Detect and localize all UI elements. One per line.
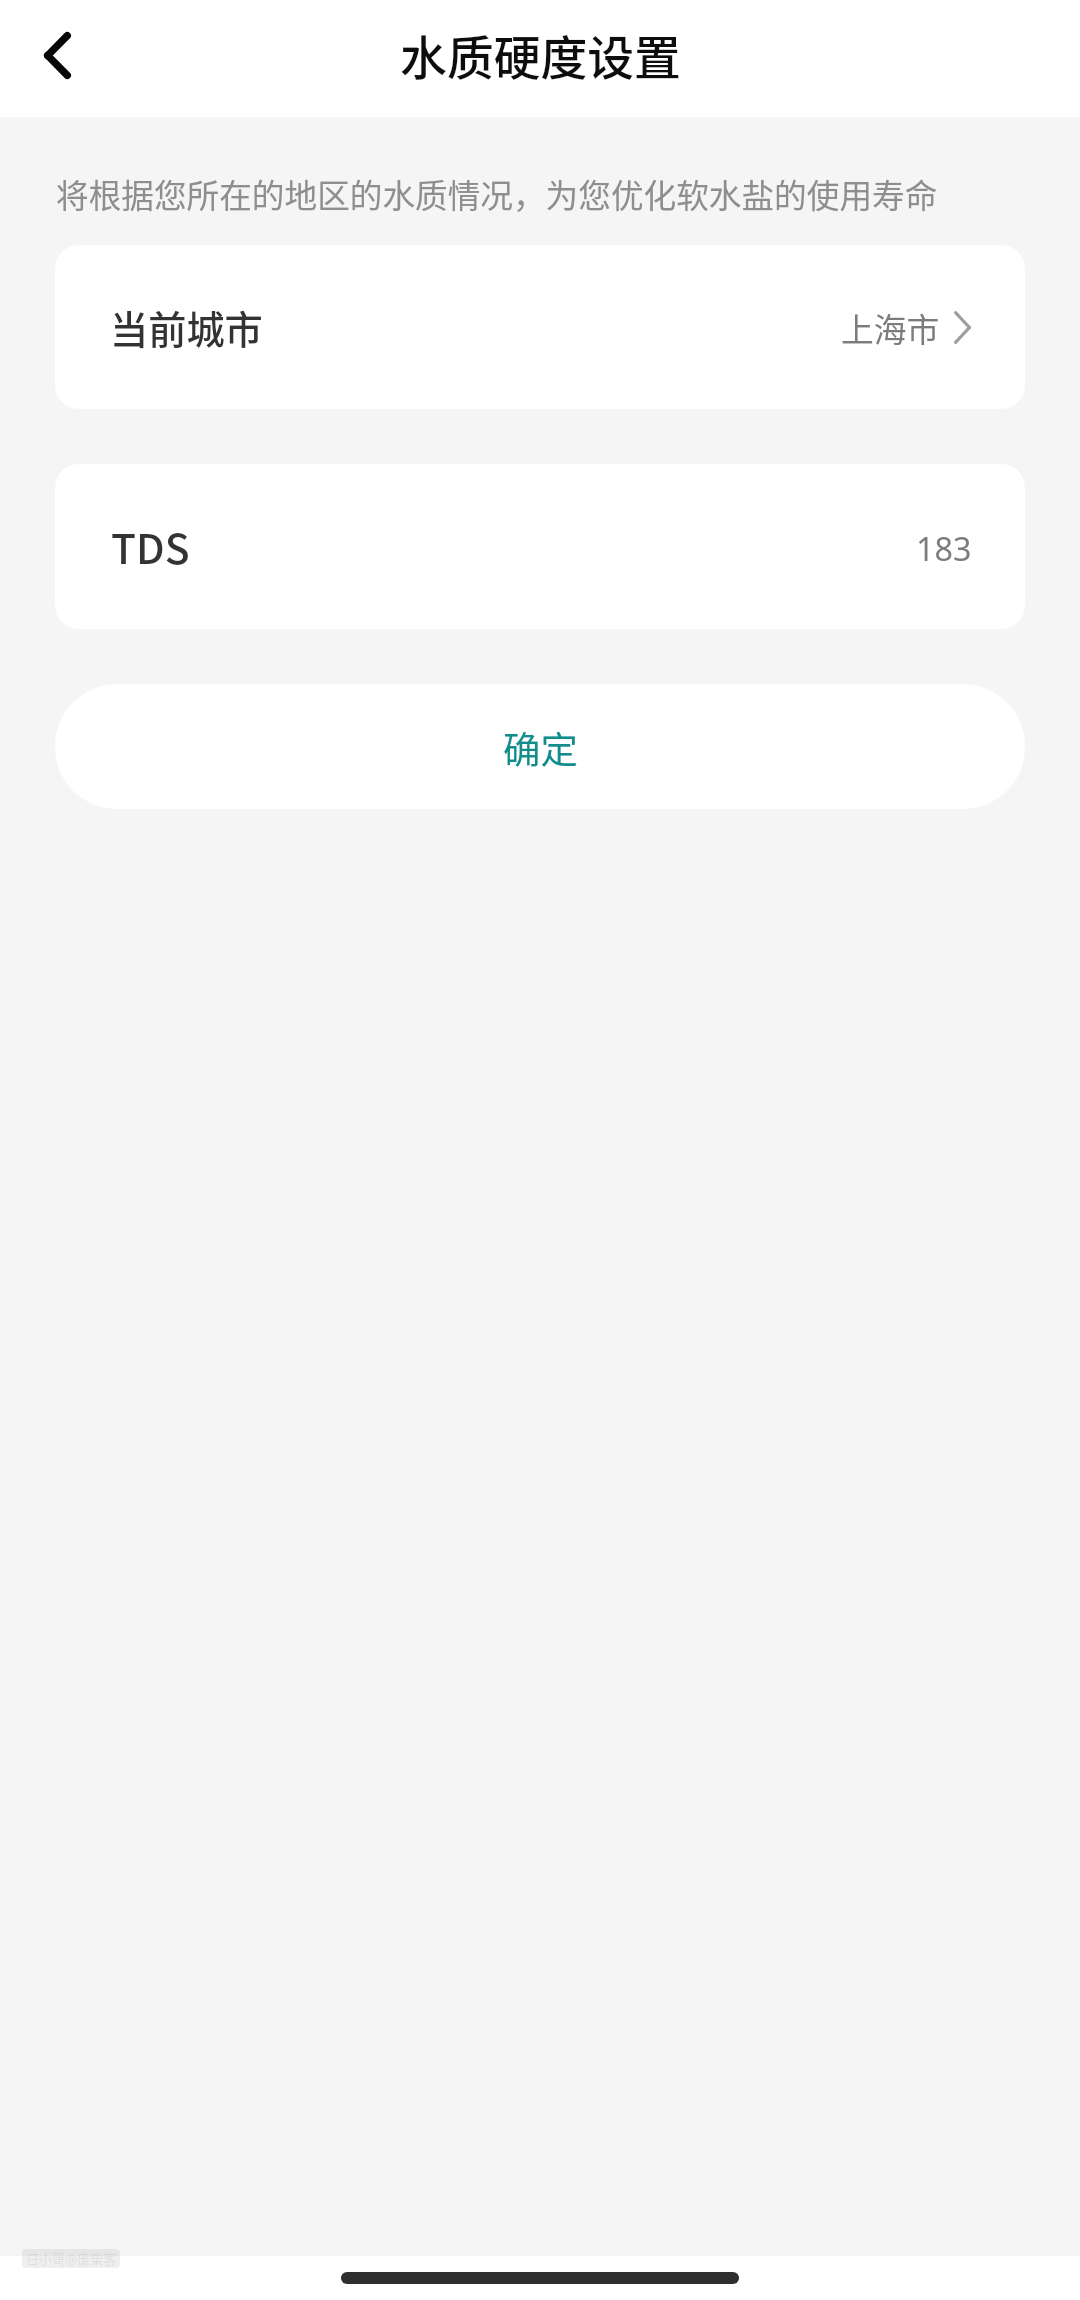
button[interactable]: 当前城市 [55,245,1025,409]
staticText: 水质硬度设置 [400,21,681,89]
staticText: 将根据您所在的地区的水质情况，为您优化软水盐的使用寿命 [56,170,938,217]
staticText: 183 [916,526,972,570]
button[interactable]: 确定 [55,684,1025,809]
button[interactable]: TDS [55,464,1025,629]
staticText: 当前城市 [110,300,263,355]
staticText: 上海市 [841,304,940,351]
button[interactable]: Back [13,15,101,103]
staticText: TDS [111,516,190,575]
staticText: 确定 [503,721,578,775]
staticText: 日小哥@废柴客 [26,2249,117,2268]
